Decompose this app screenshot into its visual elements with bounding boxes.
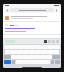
button[interactable]: Key 0 [4,45,9,49]
button[interactable]: Search [10,8,54,12]
button[interactable]: Key 2 [14,45,19,49]
button[interactable]: Action key [4,60,11,64]
button[interactable]: Key 3 [19,45,24,49]
button[interactable]: Tool 0 [44,40,47,43]
button[interactable] [3,14,61,21]
button[interactable]: Key 1 [11,55,16,59]
button[interactable]: Back [5,8,10,13]
button[interactable]: Period [51,60,54,64]
button[interactable]: Key 1 [9,45,14,49]
button[interactable]: More options [54,8,59,13]
button[interactable]: Comma [12,60,15,64]
